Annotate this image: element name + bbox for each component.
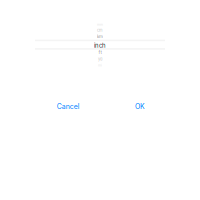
button[interactable]: OK	[107, 95, 173, 117]
staticText: yd	[98, 57, 102, 61]
staticText: km	[97, 34, 103, 40]
button[interactable]: Cancel	[35, 95, 101, 117]
staticText: Cancel	[57, 102, 80, 111]
staticText: inch	[94, 42, 106, 49]
staticText: mi	[98, 63, 102, 67]
staticText: OK	[135, 102, 145, 111]
staticText: ft	[98, 50, 101, 55]
staticText: mm	[97, 22, 103, 27]
staticText: cm	[97, 28, 103, 33]
